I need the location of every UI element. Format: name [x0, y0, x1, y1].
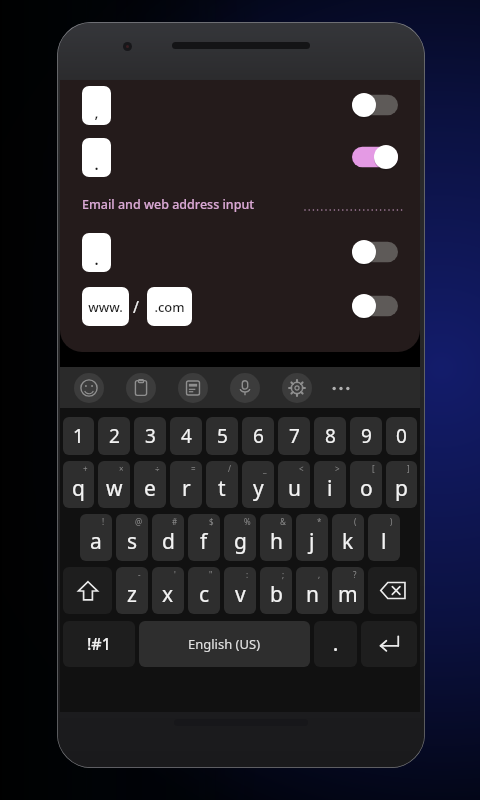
button[interactable]: English (US) [139, 621, 310, 667]
staticText: o [360, 474, 373, 503]
staticText: ( [354, 516, 357, 527]
button[interactable]: 9 [350, 417, 382, 455]
staticText: w [106, 474, 123, 503]
button[interactable]: & [260, 514, 292, 561]
button[interactable]: Clipboard [126, 373, 156, 403]
button[interactable]: ' [152, 567, 184, 614]
button[interactable]: ; [260, 567, 292, 614]
button[interactable]: More options [330, 373, 352, 403]
staticText: ; [282, 569, 285, 580]
button[interactable]: = [170, 461, 202, 508]
button[interactable]: $ [188, 514, 220, 561]
staticText: .com [154, 298, 185, 316]
staticText: 3 [145, 423, 156, 449]
button[interactable]: ) [368, 514, 400, 561]
staticText: - [138, 569, 141, 580]
staticText: ÷ [155, 463, 160, 474]
button[interactable]: / [206, 461, 238, 508]
staticText: m [338, 580, 358, 609]
button[interactable]: ÷ [134, 461, 166, 508]
staticText: s [127, 527, 138, 556]
staticText: . [94, 247, 99, 270]
button[interactable]: Translate [178, 373, 208, 403]
staticText: , [318, 569, 321, 580]
staticText: g [234, 527, 247, 556]
staticText: t [218, 474, 226, 503]
button[interactable]: 5 [206, 417, 238, 455]
button[interactable]: !#1 [63, 621, 135, 667]
staticText: ? [353, 569, 357, 580]
staticText: " [209, 569, 213, 580]
staticText: 1 [73, 423, 84, 449]
button[interactable]: < [278, 461, 310, 508]
button[interactable]: % [224, 514, 256, 561]
button[interactable]: . [82, 138, 111, 177]
button[interactable]: 4 [170, 417, 202, 455]
staticText: q [72, 474, 85, 503]
button[interactable]: 2 [98, 417, 130, 455]
button[interactable]: @ [116, 514, 148, 561]
button[interactable]: 8 [314, 417, 346, 455]
button[interactable]: Shift [63, 567, 112, 614]
staticText: = [191, 463, 196, 474]
staticText: / [133, 296, 139, 318]
button[interactable]: . [314, 621, 357, 667]
button[interactable]: Toggle on [352, 145, 398, 169]
button[interactable]: .com [147, 287, 192, 326]
button[interactable]: ? [332, 567, 364, 614]
button[interactable]: + [63, 461, 94, 508]
button[interactable]: Toggle off [352, 93, 398, 117]
staticText: c [199, 580, 210, 609]
staticText: / [228, 463, 231, 474]
button[interactable]: " [188, 567, 220, 614]
button[interactable]: Toggle off [352, 294, 398, 318]
staticText: x [162, 580, 174, 609]
staticText: ! [102, 516, 105, 527]
button[interactable]: 1 [63, 417, 94, 455]
button[interactable]: Enter [361, 621, 417, 667]
staticText: × [119, 463, 124, 474]
button[interactable]: . [82, 233, 111, 272]
button[interactable]: - [116, 567, 148, 614]
staticText: l [381, 527, 387, 556]
button[interactable]: www. [82, 287, 129, 326]
staticText: [ [372, 463, 375, 474]
button[interactable]: Emoji [74, 373, 104, 403]
staticText: k [342, 527, 354, 556]
button[interactable]: 3 [134, 417, 166, 455]
button[interactable]: Voice input [230, 373, 260, 403]
button[interactable]: Backspace [368, 567, 417, 614]
button[interactable]: , [296, 567, 328, 614]
staticText: $ [209, 516, 214, 527]
button[interactable]: * [296, 514, 328, 561]
staticText: 6 [253, 423, 264, 449]
button[interactable]: > [314, 461, 346, 508]
button[interactable]: # [152, 514, 184, 561]
staticText: d [162, 527, 175, 556]
button[interactable]: ! [80, 514, 112, 561]
button[interactable]: × [98, 461, 130, 508]
staticText: z [127, 580, 137, 609]
staticText: Email and web address input [82, 196, 255, 213]
staticText: . [94, 152, 99, 175]
button[interactable]: 0 [386, 417, 417, 455]
button[interactable]: : [224, 567, 256, 614]
staticText: j [309, 527, 315, 556]
staticText: r [182, 474, 191, 503]
staticText: ) [390, 516, 393, 527]
staticText: _ [263, 463, 267, 474]
button[interactable]: , [82, 86, 111, 125]
staticText: 9 [361, 423, 372, 449]
button[interactable]: Toggle off [352, 240, 398, 264]
button[interactable]: _ [242, 461, 274, 508]
button[interactable]: 7 [278, 417, 310, 455]
button[interactable]: Settings [282, 373, 312, 403]
button[interactable]: ( [332, 514, 364, 561]
staticText: + [83, 463, 88, 474]
button[interactable]: ] [386, 461, 417, 508]
button[interactable]: 6 [242, 417, 274, 455]
staticText: English (US) [188, 635, 261, 653]
staticText: f [200, 527, 208, 556]
button[interactable]: [ [350, 461, 382, 508]
staticText: 0 [396, 423, 407, 449]
